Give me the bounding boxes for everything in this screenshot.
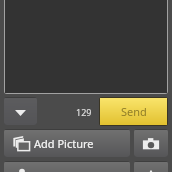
- button[interactable]: Send: [100, 98, 167, 125]
- button[interactable]: Add Picture: [4, 130, 130, 157]
- button[interactable]: Add Voice: [4, 162, 130, 172]
- staticText: Send: [121, 104, 147, 119]
- button[interactable]: Record voice: [134, 162, 168, 172]
- button[interactable]: Take picture: [134, 130, 168, 157]
- button[interactable]: Choose recipient: [4, 98, 37, 125]
- staticText: Add Picture: [34, 136, 94, 151]
- staticText: 129: [76, 106, 92, 118]
